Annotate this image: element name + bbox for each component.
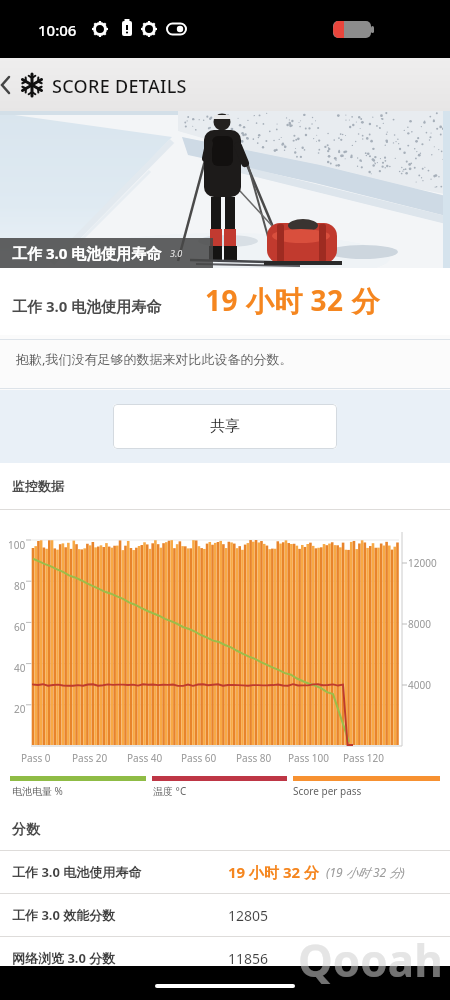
staticText: 分数	[12, 821, 40, 839]
staticText: 19 小时 32 分	[228, 862, 320, 882]
staticText: 19 小时 32 分	[205, 281, 380, 319]
button[interactable]: SCORE DETAILS	[0, 58, 450, 111]
staticText: Pass 80	[236, 751, 272, 765]
staticText: 工作 3.0 电池使用寿命	[12, 243, 162, 263]
button[interactable]: 共享	[113, 404, 337, 449]
staticText: 10:06	[38, 20, 77, 40]
staticText: 4000	[408, 678, 431, 692]
staticText: 网络浏览 3.0 分数	[12, 949, 228, 967]
staticText: 80	[14, 579, 26, 593]
staticText: Pass 120	[343, 751, 384, 765]
button[interactable]: 工作 3.0 电池使用寿命	[0, 851, 450, 893]
staticText: 温度 °C	[153, 784, 187, 798]
staticText: Score per pass	[293, 784, 362, 798]
staticText: 监控数据	[12, 478, 64, 494]
staticText: 工作 3.0 电池使用寿命	[12, 863, 228, 881]
button[interactable]: 工作 3.0 效能分数	[0, 894, 450, 936]
staticText: 11856	[228, 949, 269, 968]
staticText: 3.0	[170, 247, 183, 259]
staticText: 100	[8, 538, 26, 552]
staticText: 12805	[228, 906, 269, 925]
staticText: SCORE DETAILS	[52, 74, 187, 99]
staticText: 20	[14, 702, 26, 716]
button[interactable]: 网络浏览 3.0 分数	[0, 937, 450, 979]
staticText: Pass 100	[288, 751, 329, 765]
staticText: Pass 0	[21, 751, 51, 765]
staticText: (19 小时 32 分)	[326, 864, 405, 880]
staticText: 工作 3.0 电池使用寿命	[12, 296, 162, 316]
staticText: Qooah	[298, 930, 443, 990]
staticText: Pass 40	[127, 751, 163, 765]
staticText: 工作 3.0 效能分数	[12, 906, 228, 924]
staticText: 40	[14, 661, 26, 675]
staticText: 电池电量 %	[12, 784, 63, 798]
staticText: 8000	[408, 617, 431, 631]
staticText: 抱歉,我们没有足够的数据来对比此设备的分数。	[16, 350, 293, 368]
staticText: Pass 60	[181, 751, 217, 765]
staticText: 60	[14, 620, 26, 634]
staticText: 共享	[210, 417, 240, 436]
staticText: Pass 20	[72, 751, 108, 765]
staticText: 12000	[408, 556, 437, 570]
